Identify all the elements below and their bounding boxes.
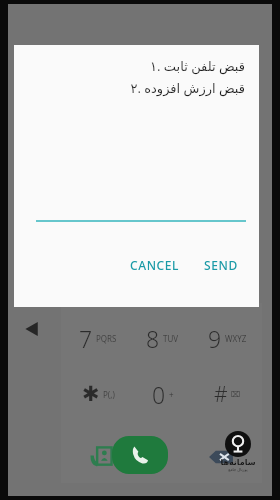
staticText: P(,) (103, 389, 115, 400)
button[interactable]: Back (18, 316, 44, 342)
staticText: ۱. قبض تلفن ثابت (149, 57, 245, 75)
button[interactable]: 9 (195, 316, 260, 360)
staticText: TUV (163, 333, 179, 344)
staticText: پورتال جامع (228, 467, 248, 472)
staticText: WXYZ (225, 333, 247, 344)
button[interactable]: Call (112, 436, 168, 474)
button[interactable]: CANCEL (123, 252, 187, 278)
staticText: 0 (152, 379, 166, 410)
staticText: ⌧ (231, 390, 241, 399)
staticText: ۲. قبض ارزش افزوده (130, 79, 245, 97)
staticText: 8 (146, 323, 160, 354)
staticText: # (214, 380, 228, 409)
staticText: ✱ (82, 382, 100, 406)
button[interactable]: Contacts (80, 436, 122, 478)
button[interactable]: ✱ (66, 372, 130, 416)
button[interactable]: SEND (197, 252, 245, 278)
staticText: 9 (208, 323, 222, 354)
staticText: 7 (79, 323, 93, 354)
staticText: CANCEL (130, 257, 180, 273)
button[interactable]: 0 (130, 372, 195, 416)
button[interactable]: 7 (66, 316, 130, 360)
button[interactable]: 8 (130, 316, 195, 360)
button[interactable] (36, 98, 246, 222)
button[interactable]: Backspace (200, 436, 242, 478)
staticText: SEND (204, 257, 238, 273)
staticText: PQRS (96, 333, 117, 344)
staticText: سامانه‌ها (220, 458, 256, 467)
staticText: + (169, 389, 174, 400)
button[interactable]: # (195, 372, 260, 416)
